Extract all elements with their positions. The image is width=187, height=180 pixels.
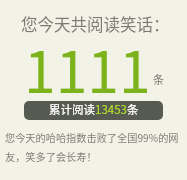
- staticText: 1111: [24, 27, 151, 110]
- staticText: 条: [153, 71, 164, 87]
- staticText: 累计阅读13453条: [49, 101, 139, 118]
- staticText: 您今天的哈哈指数击败了全国99%的网友，笑多了会长寿！: [5, 130, 185, 164]
- button[interactable]: 累计阅读 13453 条: [24, 101, 163, 120]
- staticText: 您今天共阅读笑话：: [21, 12, 170, 36]
